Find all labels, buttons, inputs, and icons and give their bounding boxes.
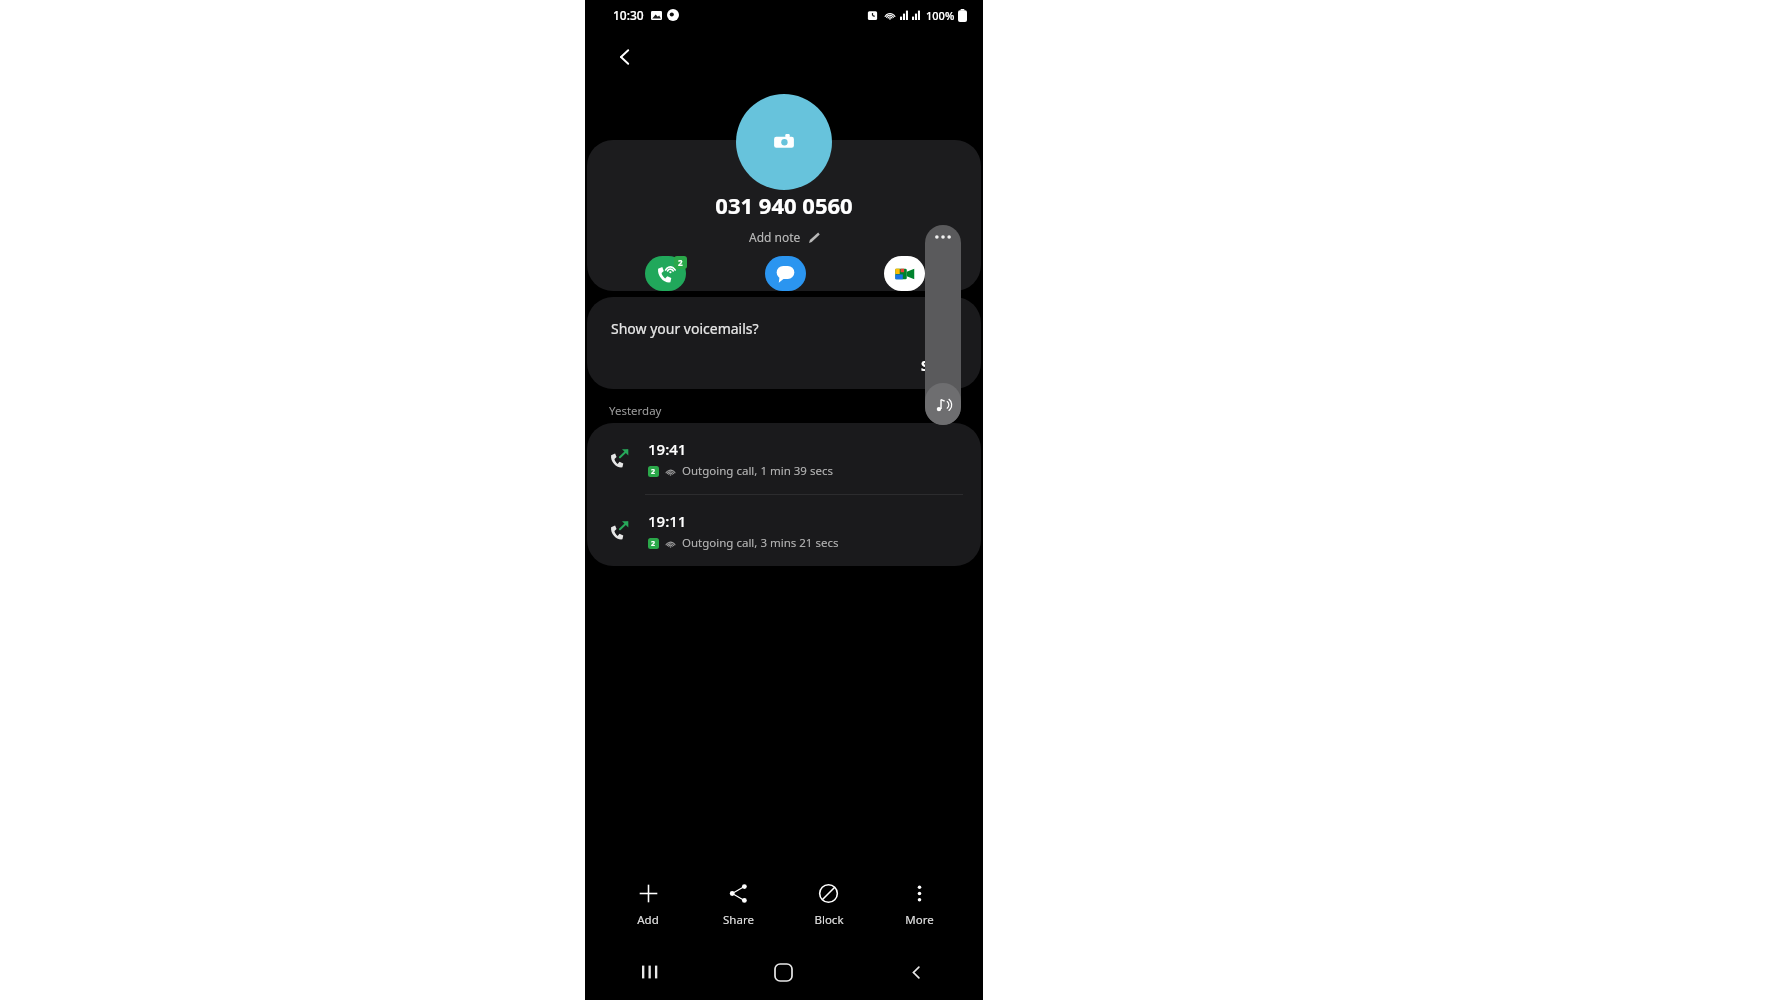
button[interactable]: Contact photo (736, 94, 832, 190)
staticText: 100% (926, 8, 955, 23)
button[interactable]: Share (693, 866, 783, 944)
staticText: 19:11 (648, 511, 687, 531)
button[interactable]: More (874, 866, 965, 944)
button[interactable]: Add note (745, 227, 824, 247)
staticText: 2 (651, 539, 656, 549)
button[interactable]: Show (913, 352, 967, 379)
button[interactable]: Add (603, 866, 693, 944)
staticText: Outgoing call, 1 min 39 secs (682, 463, 833, 479)
staticText: 2 (651, 467, 656, 477)
staticText: Yesterday (609, 403, 662, 419)
button[interactable]: Call (643, 256, 687, 291)
button[interactable]: Show your voicemails? (587, 297, 981, 389)
staticText: 10:30 (613, 7, 644, 23)
button[interactable]: Video call (884, 256, 925, 291)
staticText: Add (637, 912, 659, 928)
staticText: Add note (749, 229, 801, 245)
staticText: Share (723, 912, 754, 928)
button[interactable]: Back (601, 33, 649, 81)
button[interactable]: Recents (585, 944, 717, 1000)
staticText: More (905, 912, 934, 928)
button[interactable]: 19:11 (587, 495, 981, 566)
staticText: Block (814, 912, 844, 928)
staticText: 2 (678, 257, 683, 268)
button[interactable]: Home (717, 944, 850, 1000)
button[interactable]: Block (783, 866, 874, 944)
button[interactable]: Back (850, 944, 983, 1000)
staticText: Outgoing call, 3 mins 21 secs (682, 535, 839, 551)
button[interactable]: Message (765, 256, 806, 291)
button[interactable]: 19:41 (587, 423, 981, 495)
staticText: 19:41 (648, 439, 687, 459)
staticText: Show your voicemails? (611, 319, 759, 338)
button[interactable] (925, 225, 961, 425)
staticText: Show (921, 356, 959, 375)
staticText: 031 940 0560 (715, 190, 853, 220)
